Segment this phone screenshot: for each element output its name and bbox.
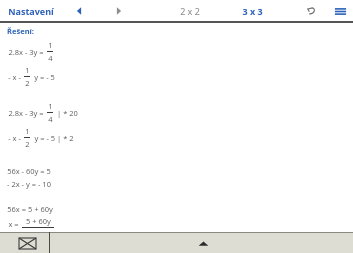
staticText: - x - <box>7 72 22 82</box>
button[interactable]: Scroll up <box>190 234 216 252</box>
button[interactable]: 3 x 3 <box>240 3 265 19</box>
button[interactable]: Nastavení <box>0 5 54 17</box>
staticText: 4 <box>48 53 53 63</box>
staticText: 4 <box>48 114 53 124</box>
staticText: 1 <box>48 40 53 50</box>
staticText: 1 <box>25 65 30 75</box>
staticText: 1 <box>25 126 30 136</box>
staticText: 5 + 60y <box>26 216 51 226</box>
button[interactable]: Undo <box>302 2 320 20</box>
button[interactable]: 2 x 2 <box>178 3 202 19</box>
staticText: 2.8x - 3y = <box>7 47 45 57</box>
staticText: 2 <box>25 139 30 149</box>
staticText: | * 20 <box>55 108 78 118</box>
button[interactable]: Mail <box>14 234 40 252</box>
staticText: - x - <box>7 133 22 143</box>
staticText: - 2x - y = - 10 <box>7 179 51 189</box>
button[interactable]: Next <box>110 2 128 20</box>
staticText: y = - 5 | * 2 <box>32 133 74 143</box>
staticText: Řešení: <box>7 26 34 36</box>
staticText: x = <box>7 219 20 229</box>
staticText: 2 <box>25 78 30 88</box>
staticText: 2.8x - 3y = <box>7 108 45 118</box>
staticText: 56x - 60y = 5 <box>7 166 51 176</box>
button[interactable]: Previous <box>70 2 88 20</box>
staticText: 56x = 5 + 60y <box>7 204 53 214</box>
staticText: y = - 5 <box>32 72 55 82</box>
button[interactable]: Menu <box>331 2 349 20</box>
staticText: 1 <box>48 101 53 111</box>
